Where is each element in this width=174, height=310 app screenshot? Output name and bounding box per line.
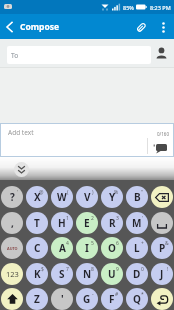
- staticText: D: [133, 267, 141, 281]
- staticText: U: [108, 267, 116, 281]
- button[interactable]: Y: [101, 186, 123, 208]
- button[interactable]: T: [26, 212, 48, 234]
- staticText: Compose: [20, 21, 60, 33]
- button[interactable]: H: [51, 212, 73, 234]
- staticText: S: [59, 267, 65, 281]
- button[interactable]: A: [51, 237, 73, 259]
- staticText: R: [109, 216, 116, 230]
- staticText: Z: [34, 292, 40, 306]
- button[interactable]: [151, 212, 173, 234]
- staticText: To: [11, 51, 19, 60]
- staticText: $: [41, 266, 44, 273]
- staticText: 3: [116, 215, 119, 222]
- staticText: ": [141, 189, 144, 196]
- button[interactable]: ?: [1, 186, 23, 208]
- button[interactable]: J: [151, 263, 173, 285]
- button[interactable]: Z: [26, 288, 48, 310]
- staticText: #: [115, 291, 119, 298]
- button[interactable]: O: [101, 237, 123, 259]
- staticText: F: [109, 292, 115, 306]
- staticText: @: [39, 189, 44, 196]
- button[interactable]: M: [126, 212, 148, 234]
- staticText: X: [34, 190, 41, 204]
- button[interactable]: C: [26, 237, 48, 259]
- staticText: +: [141, 240, 144, 247]
- staticText: AUTO: [7, 246, 18, 251]
- staticText: 123: [6, 269, 19, 279]
- staticText: K: [34, 267, 41, 281]
- button[interactable]: [0, 18, 18, 36]
- staticText: ): [92, 189, 94, 196]
- staticText: Q: [133, 292, 141, 306]
- staticText: M: [132, 216, 142, 230]
- staticText: P: [159, 241, 166, 255]
- button[interactable]: W: [51, 186, 73, 208]
- staticText: A: [59, 241, 66, 255]
- button[interactable]: L: [126, 237, 148, 259]
- staticText: &: [165, 240, 169, 247]
- staticText: 7: [66, 266, 69, 273]
- staticText: N: [83, 267, 92, 281]
- staticText: ': [17, 189, 19, 196]
- staticText: ': [142, 215, 144, 222]
- staticText: 9: [116, 266, 119, 273]
- staticText: 5: [91, 240, 94, 247]
- button[interactable]: Q: [126, 288, 148, 310]
- button[interactable]: [151, 186, 173, 208]
- staticText: -: [92, 291, 94, 298]
- staticText: H: [58, 216, 66, 230]
- staticText: 0/160: [157, 131, 169, 137]
- staticText: C: [34, 241, 41, 255]
- button[interactable]: [131, 17, 151, 37]
- staticText: !: [167, 266, 169, 273]
- button[interactable]: X: [26, 186, 48, 208]
- button[interactable]: D: [126, 263, 148, 285]
- staticText: I: [85, 241, 89, 255]
- staticText: 2: [91, 215, 94, 222]
- staticText: %: [114, 189, 119, 196]
- button[interactable]: I: [76, 237, 98, 259]
- staticText: 8:23 PM: [150, 4, 171, 11]
- staticText: 4: [66, 240, 69, 247]
- button[interactable]: To: [7, 46, 151, 64]
- staticText: T: [34, 216, 40, 230]
- staticText: (: [67, 189, 69, 196]
- button[interactable]: [1, 288, 23, 310]
- button[interactable]: G: [76, 288, 98, 310]
- button[interactable]: [155, 19, 171, 35]
- button[interactable]: AUTO: [1, 237, 23, 259]
- button[interactable]: U: [101, 263, 123, 285]
- button[interactable]: [152, 141, 168, 154]
- button[interactable]: [154, 46, 168, 60]
- button[interactable]: ': [51, 288, 73, 310]
- button[interactable]: N: [76, 263, 98, 285]
- staticText: 1: [66, 215, 69, 222]
- staticText: Add text: [8, 128, 34, 137]
- staticText: ?: [10, 190, 15, 204]
- staticText: 85%: [123, 4, 134, 11]
- button[interactable]: [14, 162, 29, 177]
- staticText: G: [83, 292, 91, 306]
- button[interactable]: P: [151, 237, 173, 259]
- button[interactable]: K: [26, 263, 48, 285]
- staticText: Y: [109, 190, 116, 204]
- staticText: 0: [141, 266, 144, 273]
- button[interactable]: B: [126, 186, 148, 208]
- button[interactable]: ,: [1, 212, 23, 234]
- button[interactable]: V: [76, 186, 98, 208]
- button[interactable]: S: [51, 263, 73, 285]
- staticText: V: [84, 190, 91, 204]
- staticText: ': [61, 292, 64, 306]
- button[interactable]: E: [76, 212, 98, 234]
- staticText: *: [141, 291, 144, 298]
- button[interactable]: F: [101, 288, 123, 310]
- staticText: O: [108, 241, 116, 255]
- staticText: 6: [116, 240, 119, 247]
- staticText: W: [57, 190, 67, 204]
- button[interactable]: [151, 288, 173, 310]
- staticText: B: [134, 190, 141, 204]
- staticText: J: [160, 267, 164, 281]
- button[interactable]: R: [101, 212, 123, 234]
- staticText: 8: [91, 266, 94, 273]
- button[interactable]: 123: [1, 263, 23, 285]
